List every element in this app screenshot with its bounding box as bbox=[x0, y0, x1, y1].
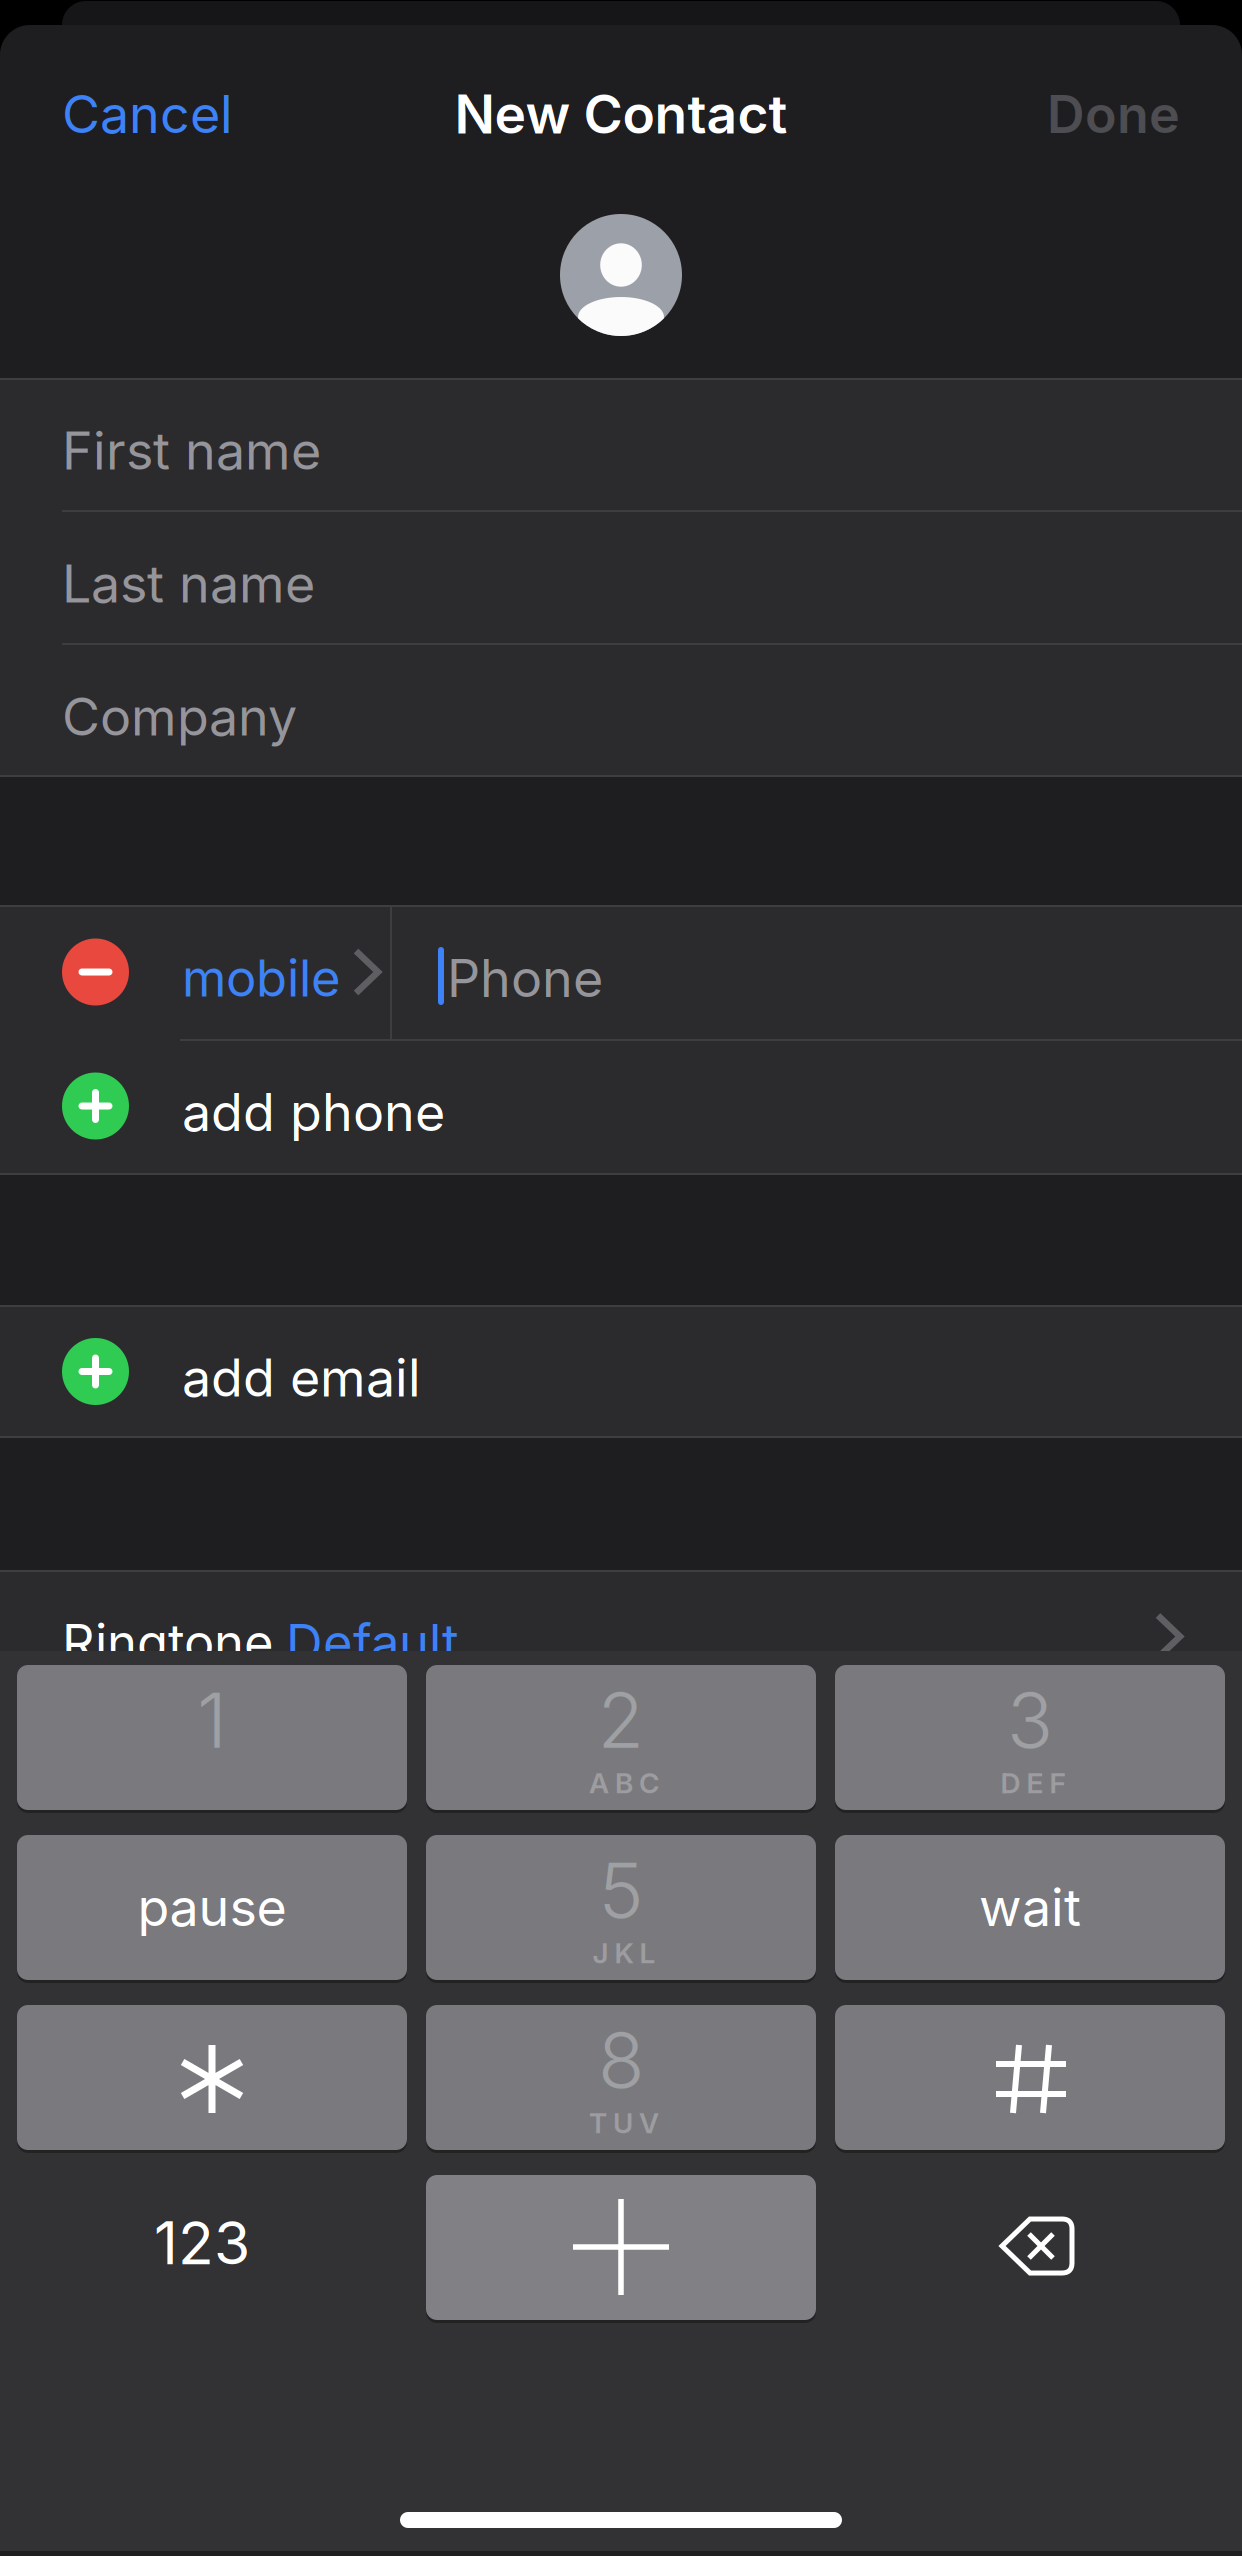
button[interactable] bbox=[17, 2005, 407, 2150]
button[interactable]: First name bbox=[0, 378, 1242, 511]
button[interactable]: Done bbox=[880, 69, 1180, 159]
button[interactable]: Phone bbox=[390, 905, 1242, 1039]
staticText: Ringtone bbox=[62, 1613, 274, 1672]
button[interactable]: Company bbox=[0, 644, 1242, 777]
button[interactable]: 3 bbox=[835, 1665, 1225, 1810]
staticText: DEF bbox=[1000, 1766, 1065, 1799]
staticText: Cancel bbox=[62, 83, 233, 145]
button[interactable]: Cancel bbox=[62, 69, 362, 159]
staticText: First name bbox=[62, 420, 321, 481]
button[interactable]: add phone bbox=[0, 1039, 1242, 1173]
button[interactable]: pause bbox=[17, 1835, 407, 1980]
button[interactable]: add email bbox=[0, 1305, 1242, 1438]
button[interactable]: 8 bbox=[426, 2005, 816, 2150]
staticText: 3 bbox=[1007, 1675, 1053, 1765]
staticText: add phone bbox=[182, 1081, 445, 1143]
staticText: 123 bbox=[154, 2208, 250, 2278]
staticText: 5 bbox=[598, 1845, 643, 1935]
button[interactable]: 5 bbox=[426, 1835, 816, 1980]
button[interactable] bbox=[835, 2005, 1225, 2150]
button[interactable] bbox=[0, 905, 180, 1039]
staticText: wait bbox=[979, 1876, 1081, 1938]
staticText: Phone bbox=[447, 947, 603, 1009]
button[interactable] bbox=[560, 214, 682, 336]
staticText: New Contact bbox=[454, 82, 787, 145]
staticText: 8 bbox=[598, 2015, 644, 2105]
button[interactable]: mobile bbox=[180, 905, 390, 1039]
staticText: 1 bbox=[197, 1675, 227, 1765]
staticText: Done bbox=[1047, 83, 1180, 145]
button[interactable] bbox=[835, 2175, 1225, 2320]
staticText: TUV bbox=[589, 2106, 659, 2139]
staticText: Company bbox=[62, 686, 297, 747]
button[interactable] bbox=[426, 2175, 816, 2320]
button[interactable]: Last name bbox=[0, 511, 1242, 644]
staticText: Last name bbox=[62, 553, 315, 614]
button[interactable]: 1 bbox=[17, 1665, 407, 1810]
staticText: Default bbox=[286, 1613, 459, 1672]
button[interactable]: 123 bbox=[17, 2175, 407, 2320]
staticText: add email bbox=[182, 1347, 421, 1408]
button[interactable]: wait bbox=[835, 1835, 1225, 1980]
staticText: 2 bbox=[597, 1675, 644, 1765]
staticText: ABC bbox=[589, 1766, 659, 1799]
staticText: JKL bbox=[592, 1936, 655, 1969]
staticText: pause bbox=[137, 1876, 286, 1938]
button[interactable]: 2 bbox=[426, 1665, 816, 1810]
staticText: mobile bbox=[182, 948, 341, 1008]
button[interactable]: Ringtone bbox=[0, 1570, 1242, 1703]
